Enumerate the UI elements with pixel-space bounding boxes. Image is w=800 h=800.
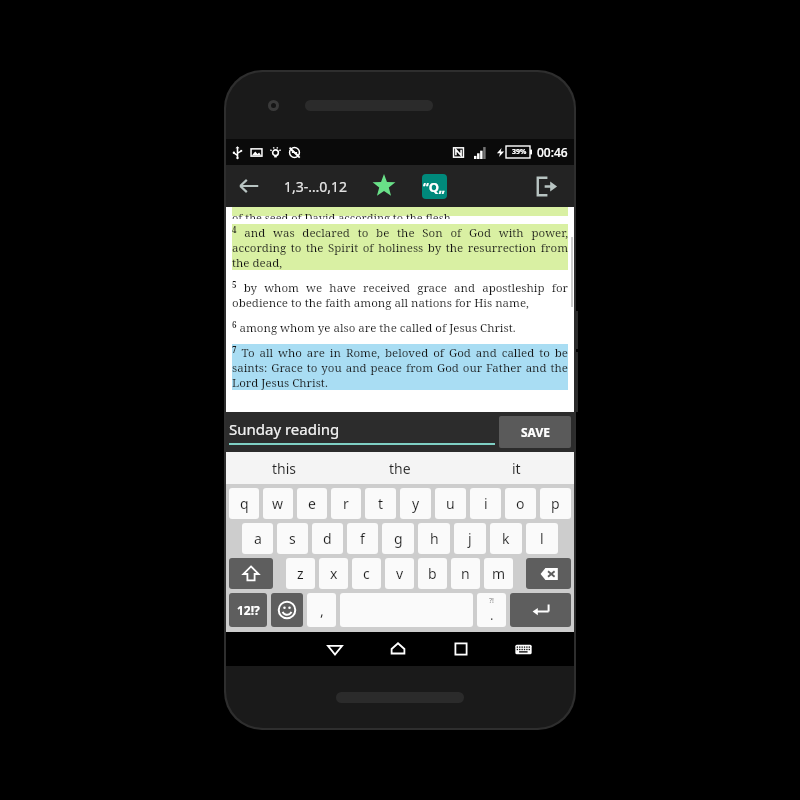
button[interactable]: Emoji [271, 593, 303, 627]
staticText: of the seed of David according to the fl… [232, 210, 454, 219]
button[interactable]: Shift [229, 558, 273, 589]
staticText: 39% [512, 147, 527, 157]
staticText: m [492, 564, 506, 583]
button[interactable]: k [490, 523, 522, 554]
button[interactable]: x [319, 558, 348, 589]
staticText: a [254, 529, 262, 548]
button[interactable]: z [286, 558, 315, 589]
button[interactable]: 1,3-…0,12 [272, 165, 360, 207]
staticText: q [240, 494, 249, 513]
button[interactable]: g [382, 523, 414, 554]
button[interactable]: 12!? [229, 593, 267, 627]
staticText: t [378, 494, 384, 513]
button[interactable]: y [400, 488, 431, 519]
staticText: Sunday reading [229, 419, 340, 439]
button[interactable]: n [451, 558, 480, 589]
button[interactable]: Exit [522, 165, 570, 207]
button[interactable]: e [297, 488, 327, 519]
button[interactable]: f [347, 523, 378, 554]
button[interactable]: t [365, 488, 396, 519]
staticText: 5 by whom we have received grace and apo… [232, 279, 568, 310]
button[interactable]: s [277, 523, 308, 554]
button[interactable]: Recents [429, 632, 492, 666]
button[interactable]: m [484, 558, 513, 589]
staticText: “Q„ [423, 178, 446, 196]
staticText: g [394, 529, 403, 548]
button[interactable]: this [226, 452, 342, 484]
staticText: . [490, 606, 494, 624]
staticText: w [272, 494, 284, 513]
button[interactable]: w [263, 488, 293, 519]
button[interactable]: Enter [510, 593, 571, 627]
staticText: f [360, 529, 365, 548]
button[interactable]: o [505, 488, 536, 519]
staticText: k [502, 529, 510, 548]
staticText: x [330, 564, 338, 583]
staticText: j [468, 529, 472, 548]
button[interactable]: of the seed of David according to the fl… [226, 207, 574, 412]
staticText: 6 among whom ye also are the called of J… [232, 319, 516, 335]
button[interactable]: b [418, 558, 447, 589]
staticText: i [484, 494, 488, 513]
button[interactable]: Sunday reading [229, 412, 495, 452]
button[interactable]: q [229, 488, 259, 519]
button[interactable]: v [385, 558, 414, 589]
button[interactable]: r [331, 488, 361, 519]
button[interactable]: i [470, 488, 501, 519]
staticText: it [512, 459, 521, 478]
button[interactable]: , [307, 593, 336, 627]
button[interactable]: Bookmark [360, 165, 408, 207]
staticText: r [343, 494, 349, 513]
button[interactable]: SAVE [499, 416, 571, 448]
button[interactable]: a [242, 523, 273, 554]
button[interactable]: Keyboard [492, 632, 555, 666]
staticText: d [323, 529, 332, 548]
staticText: this [272, 459, 297, 478]
staticText: 12!? [237, 602, 260, 618]
staticText: 4 and was declared to be the Son of God … [232, 224, 568, 270]
staticText: p [551, 494, 560, 513]
staticText: u [446, 494, 455, 513]
button[interactable]: it [458, 452, 574, 484]
button[interactable]: Home [366, 632, 429, 666]
staticText: 1,3-…0,12 [284, 177, 348, 196]
button[interactable]: u [435, 488, 466, 519]
staticText: v [396, 564, 404, 583]
staticText: SAVE [521, 424, 550, 440]
button[interactable]: Quote [408, 165, 460, 207]
button[interactable]: ?! [477, 593, 506, 627]
staticText: h [430, 529, 439, 548]
staticText: c [363, 564, 370, 583]
staticText: o [516, 494, 525, 513]
button[interactable]: l [526, 523, 558, 554]
staticText: 7 To all who are in Rome, beloved of God… [232, 344, 568, 390]
staticText: l [540, 529, 544, 548]
staticText: ?! [489, 596, 494, 606]
button[interactable]: Back [226, 165, 272, 207]
button[interactable]: d [312, 523, 343, 554]
staticText: 00:46 [537, 144, 568, 160]
button[interactable]: Backspace [526, 558, 571, 589]
button[interactable]: h [418, 523, 450, 554]
staticText: y [412, 494, 420, 513]
staticText: n [461, 564, 470, 583]
button[interactable]: c [352, 558, 381, 589]
staticText: s [289, 529, 296, 548]
button[interactable]: p [540, 488, 571, 519]
staticText: b [428, 564, 437, 583]
staticText: the [389, 459, 411, 478]
button[interactable]: the [342, 452, 458, 484]
staticText: e [308, 494, 316, 513]
button[interactable]: j [454, 523, 486, 554]
staticText: z [297, 564, 304, 583]
staticText: , [320, 601, 324, 620]
button[interactable]: Back [303, 632, 366, 666]
